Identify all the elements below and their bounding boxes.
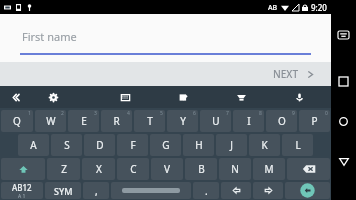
staticText: C: [130, 162, 137, 176]
button[interactable]: P: [299, 110, 330, 132]
button[interactable]: R: [101, 110, 132, 132]
button[interactable]: E: [68, 110, 99, 132]
button[interactable]: C: [117, 158, 149, 180]
staticText: F: [130, 138, 136, 152]
button[interactable]: H: [183, 134, 214, 156]
staticText: P: [311, 114, 318, 128]
button[interactable]: ,: [83, 182, 109, 199]
button[interactable]: L: [282, 134, 313, 156]
button[interactable]: Right: [253, 182, 283, 199]
staticText: 5: [160, 110, 163, 117]
staticText: W: [46, 114, 56, 128]
staticText: I: [247, 114, 251, 128]
staticText: 0: [325, 110, 328, 117]
staticText: Y: [180, 114, 186, 128]
button[interactable]: Settings: [35, 86, 71, 108]
staticText: Z: [61, 162, 67, 176]
button[interactable]: T: [134, 110, 165, 132]
staticText: ,: [95, 184, 98, 198]
staticText: D: [96, 138, 104, 152]
staticText: E: [81, 114, 87, 128]
button[interactable]: Clipboard: [223, 86, 259, 108]
button[interactable]: I: [233, 110, 264, 132]
staticText: 1: [28, 110, 31, 117]
staticText: H: [195, 138, 203, 152]
button[interactable]: Q: [1, 110, 33, 132]
staticText: 9:20: [311, 2, 327, 13]
button[interactable]: Notes: [165, 86, 201, 108]
button[interactable]: Y: [167, 110, 198, 132]
staticText: L: [295, 138, 301, 152]
staticText: 8: [259, 110, 262, 117]
button[interactable]: .: [193, 182, 219, 199]
staticText: 7: [226, 110, 229, 117]
staticText: NEXT: [273, 67, 299, 81]
button[interactable]: SYM: [45, 182, 81, 199]
staticText: AB: [268, 3, 278, 13]
button[interactable]: S: [51, 134, 82, 156]
staticText: 3: [94, 110, 97, 117]
button[interactable]: W: [35, 110, 66, 132]
staticText: Q: [13, 114, 21, 128]
button[interactable]: Z: [47, 158, 80, 180]
button[interactable]: Voice input: [281, 86, 317, 108]
staticText: 6: [193, 110, 196, 117]
button[interactable]: Left: [221, 182, 251, 199]
button[interactable]: V: [151, 158, 183, 180]
button[interactable]: J: [216, 134, 247, 156]
button[interactable]: G: [150, 134, 181, 156]
button[interactable]: Backspace: [287, 158, 330, 180]
button[interactable]: A: [18, 134, 49, 156]
staticText: J: [230, 138, 233, 152]
button[interactable]: O: [266, 110, 297, 132]
staticText: V: [164, 162, 170, 176]
staticText: T: [147, 114, 153, 128]
staticText: S: [64, 138, 70, 152]
staticText: First name: [22, 29, 77, 44]
staticText: O: [278, 114, 286, 128]
staticText: SYM: [54, 185, 73, 197]
button[interactable]: Hide keyboard: [331, 149, 356, 174]
button[interactable]: M: [253, 158, 285, 180]
staticText: AB12: [12, 182, 32, 193]
staticText: G: [162, 138, 170, 152]
staticText: R: [113, 114, 120, 128]
button[interactable]: D: [84, 134, 115, 156]
button[interactable]: Recents: [331, 69, 356, 94]
button[interactable]: NEXT: [269, 64, 319, 84]
staticText: 4: [127, 110, 130, 117]
button[interactable]: Keyboard: [331, 22, 356, 47]
staticText: 9: [292, 110, 295, 117]
button[interactable]: X: [82, 158, 115, 180]
staticText: B: [198, 162, 205, 176]
button[interactable]: K: [249, 134, 280, 156]
button[interactable]: Enter: [285, 182, 330, 199]
button[interactable]: U: [200, 110, 231, 132]
staticText: A 1: [18, 193, 26, 199]
button[interactable]: N: [219, 158, 251, 180]
staticText: 2: [61, 110, 64, 117]
staticText: K: [261, 138, 268, 152]
staticText: M: [264, 162, 274, 176]
staticText: N: [231, 162, 239, 176]
staticText: U: [212, 114, 220, 128]
staticText: .: [205, 184, 208, 198]
button[interactable]: F: [117, 134, 148, 156]
staticText: A: [30, 138, 37, 152]
staticText: X: [96, 162, 102, 176]
button[interactable]: Keyboard layout: [107, 86, 143, 108]
button[interactable]: Shift: [1, 158, 45, 180]
button[interactable]: Home: [331, 109, 356, 134]
button[interactable]: B: [185, 158, 217, 180]
button[interactable]: Previous: [0, 86, 35, 108]
button[interactable]: AB12: [1, 182, 43, 199]
button[interactable]: Space: [111, 182, 191, 199]
